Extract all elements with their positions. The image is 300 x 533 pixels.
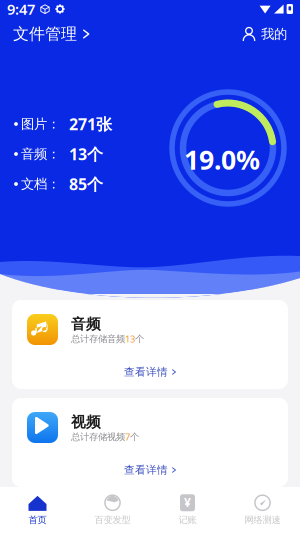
button[interactable]: 查看详情 xyxy=(12,361,288,383)
staticText: 13个 xyxy=(69,143,103,165)
staticText: 85个 xyxy=(69,173,103,195)
staticText: 查看详情 xyxy=(124,365,168,378)
staticText: 7 xyxy=(125,431,130,443)
staticText: 百变发型 xyxy=(94,514,130,526)
staticText: 音频 xyxy=(71,315,101,333)
staticText: ¥ xyxy=(184,494,191,510)
button[interactable]: 我的 xyxy=(242,22,287,46)
staticText: 网络测速 xyxy=(244,514,280,526)
staticText: 查看详情 xyxy=(124,463,168,476)
button[interactable]: 文件管理 xyxy=(13,20,89,48)
staticText: 文件管理 xyxy=(13,24,77,44)
staticText: 首页 xyxy=(28,514,46,526)
staticText: 文档： xyxy=(21,176,60,192)
staticText: 个 xyxy=(130,431,139,443)
staticText: 13 xyxy=(125,333,135,345)
staticText: 图片： xyxy=(21,116,60,132)
staticText: 个 xyxy=(135,333,144,345)
staticText: 视频 xyxy=(71,413,101,431)
staticText: 总计存储视频 xyxy=(71,431,125,443)
button[interactable]: 查看详情 xyxy=(12,459,288,481)
staticText: 19.0% xyxy=(184,142,260,177)
button[interactable]: ¥ xyxy=(150,487,225,533)
staticText: 记账 xyxy=(178,514,196,526)
button[interactable]: 百变发型 xyxy=(75,487,150,533)
button[interactable]: 首页 xyxy=(0,487,75,533)
button[interactable]: 网络测速 xyxy=(225,487,300,533)
staticText: 我的 xyxy=(261,26,287,42)
staticText: 音频： xyxy=(21,146,60,162)
staticText: 271张 xyxy=(69,113,112,135)
staticText: 总计存储音频 xyxy=(71,333,125,345)
staticText: 9:47 xyxy=(7,0,35,19)
